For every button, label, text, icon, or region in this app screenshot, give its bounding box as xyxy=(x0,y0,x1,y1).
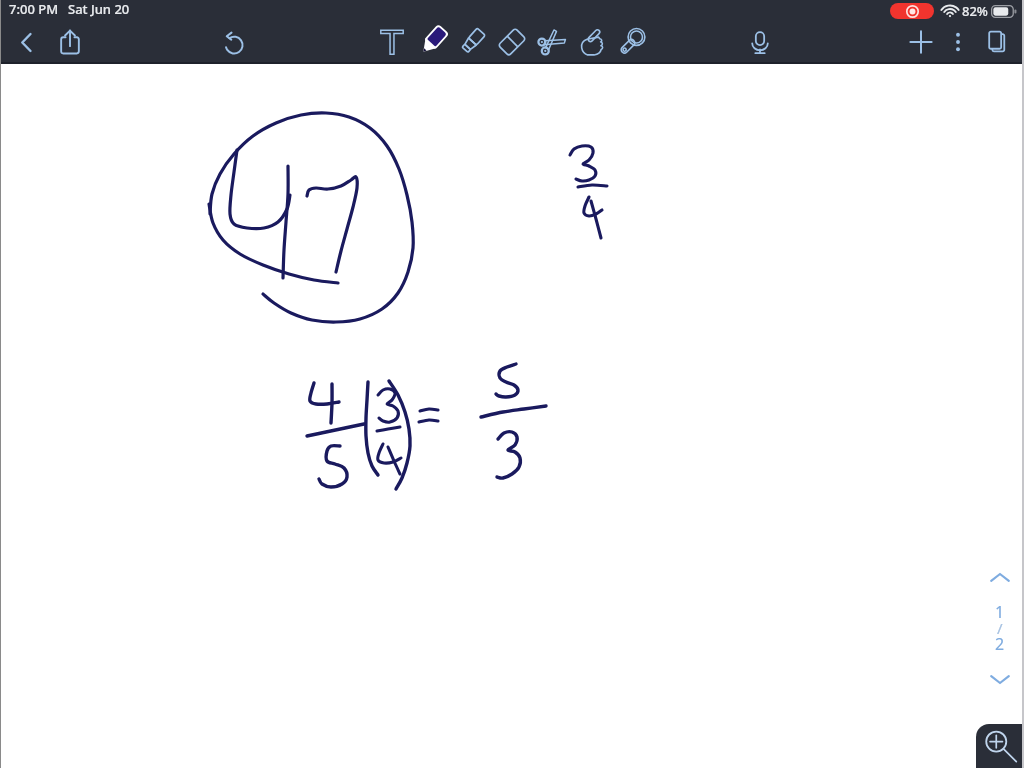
button[interactable]: Zoom in xyxy=(976,724,1024,768)
button[interactable]: Pen tool xyxy=(412,22,452,62)
staticText: / xyxy=(997,618,1003,638)
button[interactable]: Lasso xyxy=(612,22,652,62)
button[interactable]: Previous page xyxy=(986,564,1014,592)
button[interactable]: More options xyxy=(938,22,978,62)
staticText: 1 xyxy=(995,601,1005,623)
staticText: 82% xyxy=(962,2,988,20)
button[interactable]: Undo xyxy=(212,22,252,62)
button[interactable]: Record audio xyxy=(740,22,780,62)
button[interactable]: Text tool xyxy=(372,22,412,62)
button[interactable]: Cut xyxy=(532,22,572,62)
staticText: 2 xyxy=(995,633,1005,655)
staticText: 7:00 PM xyxy=(9,0,59,18)
button[interactable]: Add xyxy=(901,22,941,62)
button[interactable]: Eraser xyxy=(492,22,532,62)
button[interactable]: Pages xyxy=(977,22,1017,62)
staticText: Sat Jun 20 xyxy=(68,0,130,18)
button[interactable]: Highlighter xyxy=(452,22,492,62)
button[interactable]: Next page xyxy=(986,665,1014,693)
button[interactable]: Back xyxy=(6,22,46,62)
button[interactable]: Hand tool xyxy=(572,22,612,62)
button[interactable]: Share xyxy=(50,22,90,62)
